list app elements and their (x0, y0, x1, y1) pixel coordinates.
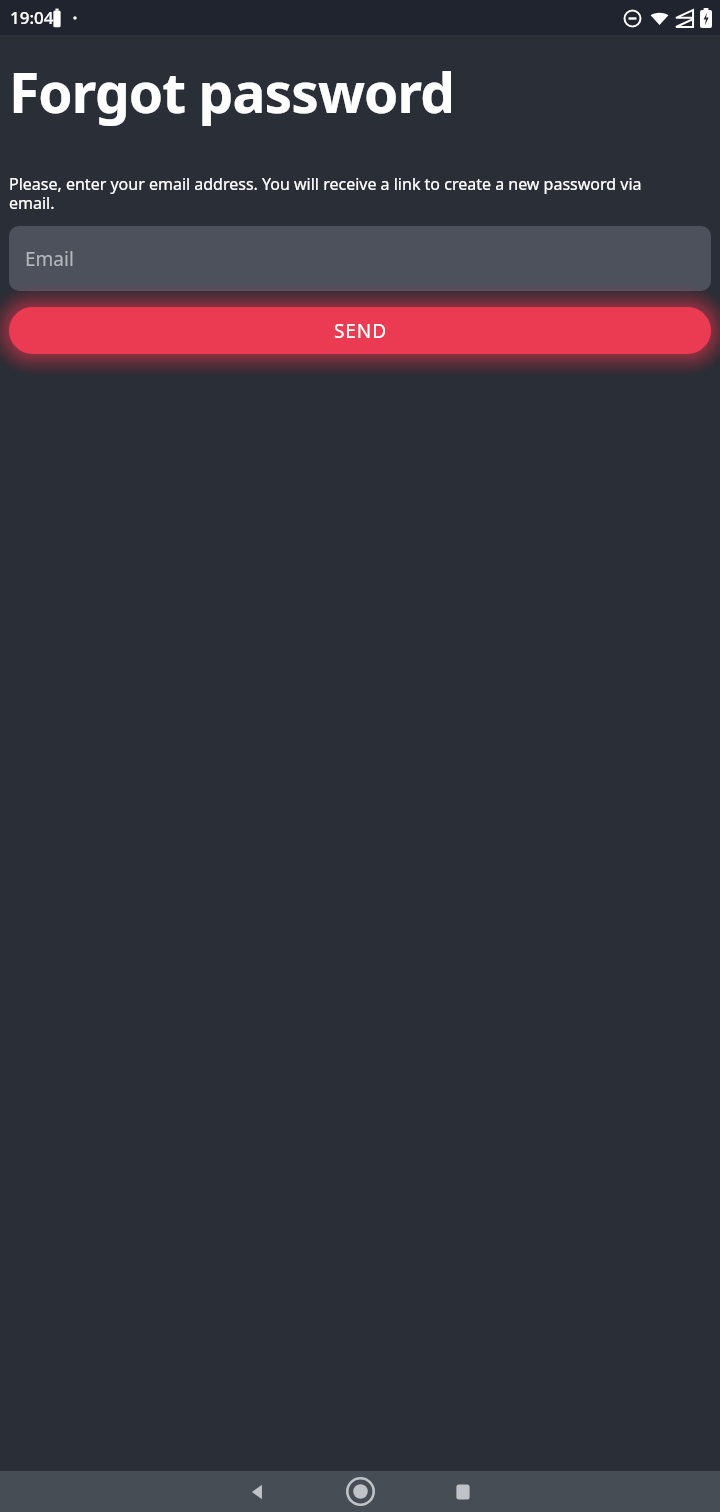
button[interactable]: Recent apps (453, 1482, 473, 1502)
staticText: 19:04 (10, 6, 54, 29)
staticText: Email (25, 246, 74, 272)
button[interactable]: Back (247, 1481, 269, 1503)
staticText: SEND (334, 318, 387, 344)
button[interactable]: SEND (9, 307, 711, 354)
button[interactable]: Home (344, 1475, 377, 1508)
staticText: Please, enter your email address. You wi… (9, 173, 679, 213)
staticText: Forgot password (9, 54, 455, 129)
button[interactable]: Email (9, 226, 711, 291)
